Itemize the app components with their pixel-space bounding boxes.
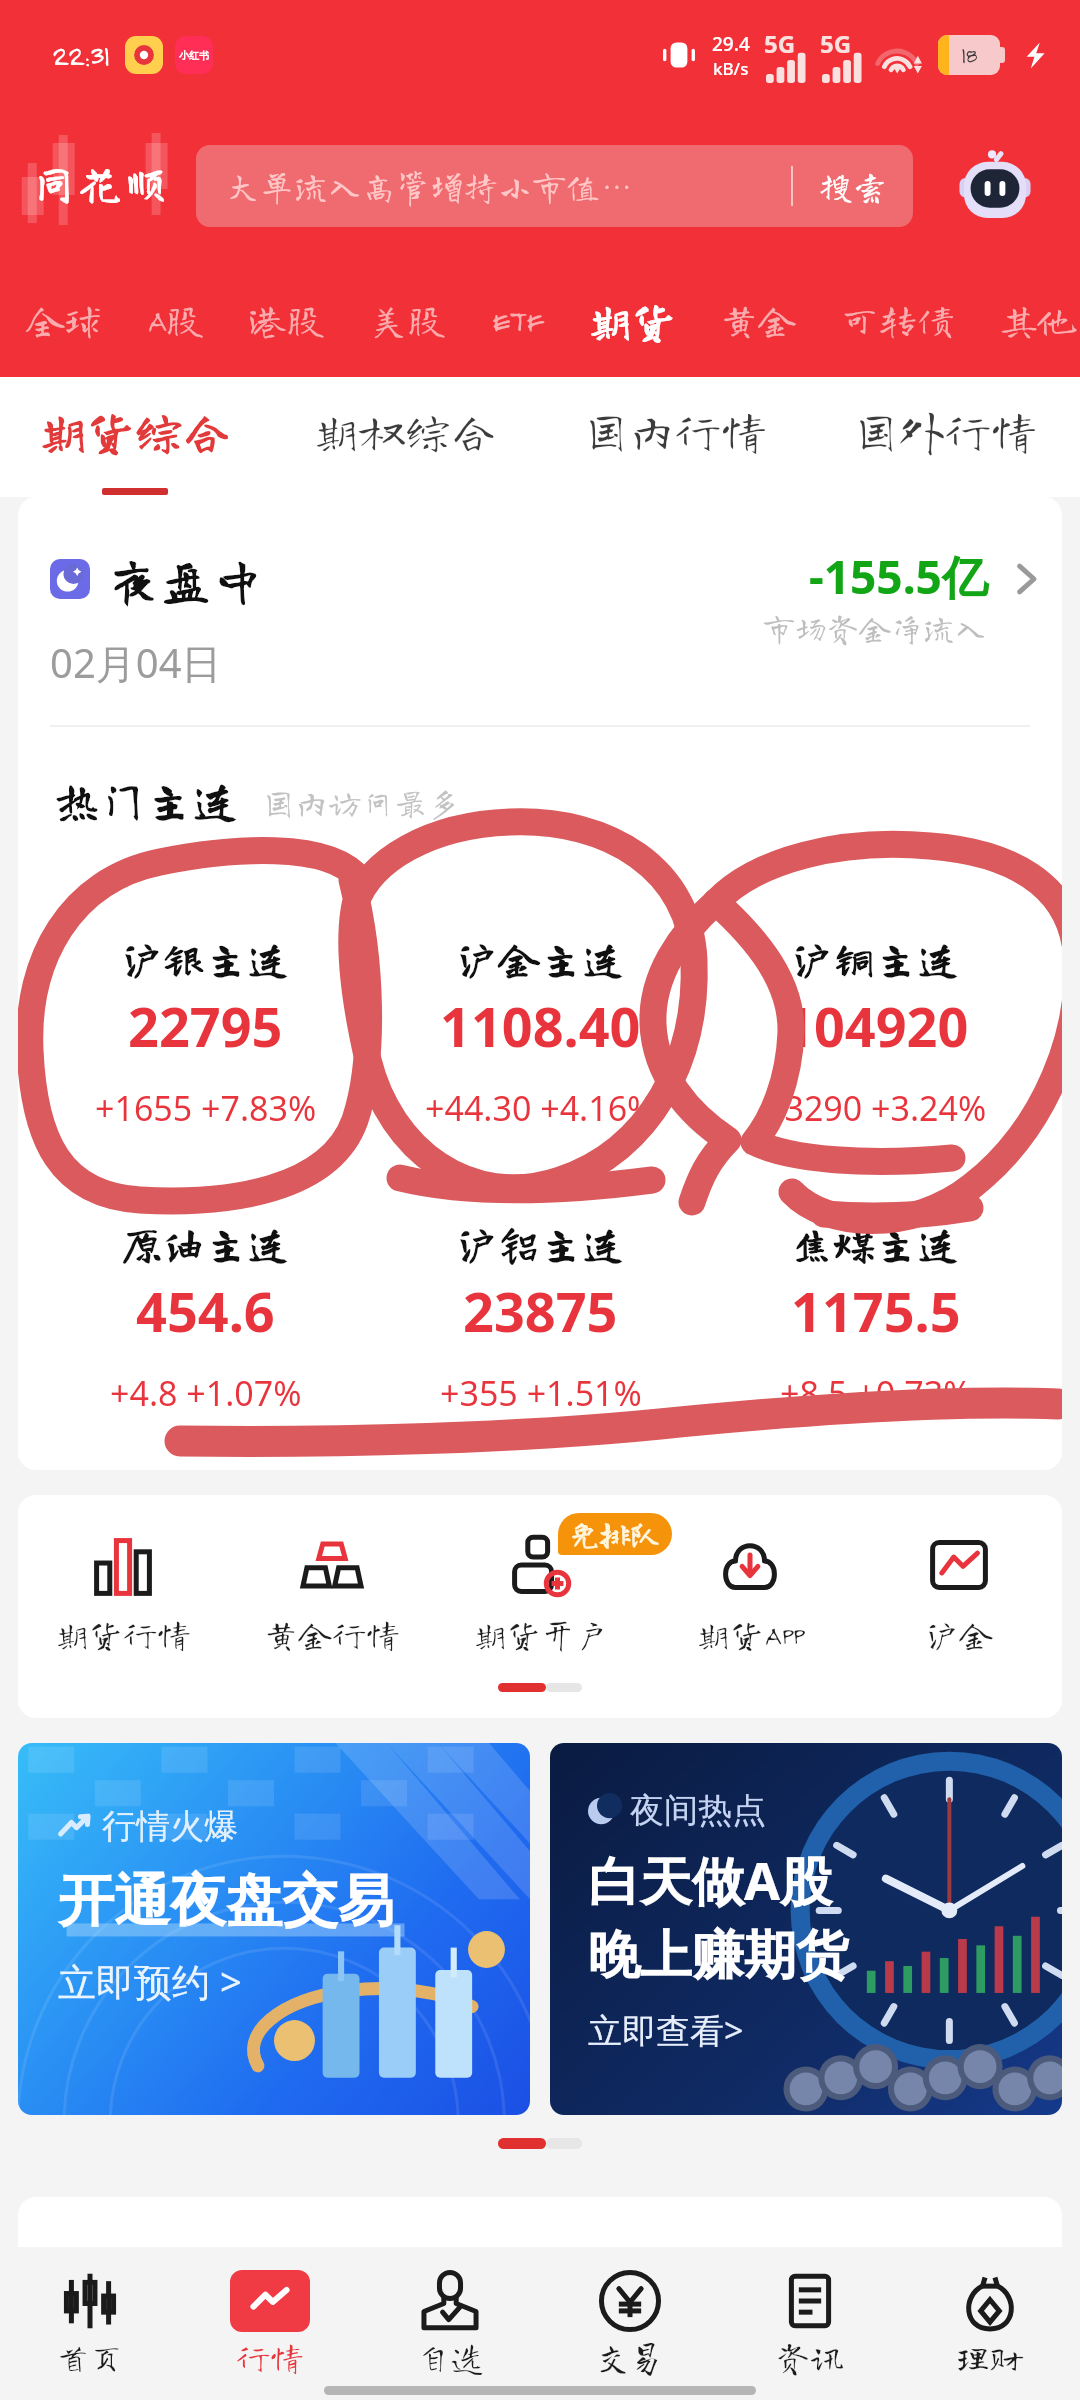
button[interactable]: 首页 <box>0 2268 180 2398</box>
button[interactable]: 期货 <box>566 298 698 342</box>
staticText: 资讯 <box>776 2340 844 2374</box>
button[interactable]: 沪金主连 <box>373 937 708 1131</box>
staticText: 沪银主连 <box>121 937 290 979</box>
staticText: 黄金行情 <box>264 1617 400 1651</box>
staticText: 国外行情 <box>853 408 1037 454</box>
button[interactable]: 期货综合 <box>0 377 270 497</box>
staticText: 夜盘中 <box>108 553 265 605</box>
staticText: 期货行情 <box>55 1617 191 1651</box>
staticText: 1108.40 <box>440 989 641 1063</box>
staticText: 22795 <box>128 989 283 1063</box>
staticText: 国内行情 <box>583 408 767 454</box>
staticText: 22:31 <box>52 38 109 72</box>
staticText: 其他 <box>1000 301 1058 339</box>
staticText: 沪铜主连 <box>791 937 960 979</box>
staticText: 可转债 <box>841 301 956 339</box>
staticText: 期货开户 <box>473 1617 609 1651</box>
staticText: +44.30 +4.16% <box>425 1085 656 1131</box>
button[interactable]: 期货开户 <box>436 1527 645 1651</box>
button[interactable]: 可转债 <box>819 301 978 339</box>
staticText: 1175.5 <box>791 1274 961 1348</box>
staticText: 沪金主连 <box>456 937 625 979</box>
button[interactable]: 夜间热点 <box>550 1743 1062 2115</box>
button[interactable]: 行情 <box>180 2268 360 2398</box>
staticText: 29.4 <box>712 31 750 57</box>
staticText: 同花顺 <box>31 160 169 206</box>
button[interactable]: 港股 <box>227 301 348 339</box>
staticText: 大单流入高管增持小市值… <box>226 169 791 203</box>
button[interactable]: 黄金行情 <box>227 1527 436 1651</box>
button[interactable]: 沪铜主连 <box>708 937 1043 1131</box>
staticText: 沪金 <box>925 1617 993 1651</box>
staticText: 全球 <box>26 301 103 339</box>
button[interactable]: 焦煤主连 <box>708 1222 1043 1416</box>
button[interactable]: 黄金 <box>698 301 819 339</box>
staticText: 原油主连 <box>121 1222 290 1264</box>
staticText: 小红书 <box>179 49 209 62</box>
staticText: 期货综合 <box>39 407 232 455</box>
staticText: 立即预约 > <box>58 1955 242 2007</box>
staticText: +3290 +3.24% <box>765 1085 987 1131</box>
button[interactable]: 原油主连 <box>38 1222 373 1416</box>
staticText: 454.6 <box>136 1274 275 1348</box>
staticText: 美股 <box>370 301 447 339</box>
button[interactable]: 大单流入高管增持小市值… <box>196 145 913 227</box>
button[interactable]: AI 助手 <box>958 150 1032 224</box>
staticText: 搜索 <box>819 169 887 203</box>
staticText: +1655 +7.83% <box>95 1085 317 1131</box>
staticText: 晚上赚期货 <box>588 1923 848 1989</box>
staticText: 行情火爆 <box>102 1805 238 1848</box>
button[interactable]: 交易 <box>540 2268 720 2398</box>
staticText: 交易 <box>596 2340 664 2374</box>
staticText: 首页 <box>56 2340 124 2374</box>
button[interactable]: ETF <box>469 301 566 339</box>
staticText: +4.8 +1.07% <box>110 1370 302 1416</box>
button[interactable]: 其他 <box>978 301 1080 339</box>
button[interactable]: 沪铝主连 <box>373 1222 708 1416</box>
staticText: 热门主连 <box>54 777 238 823</box>
staticText: 夜间热点 <box>630 1789 766 1832</box>
staticText: 期货 <box>588 298 676 342</box>
button[interactable]: 美股 <box>348 301 469 339</box>
staticText: kB/s <box>713 57 749 80</box>
staticText: 开通夜盘交易 <box>58 1866 394 1937</box>
button[interactable]: 期权综合 <box>270 377 540 497</box>
staticText: 期权综合 <box>313 408 497 454</box>
button[interactable]: 国内行情 <box>540 377 810 497</box>
staticText: 104920 <box>783 989 969 1063</box>
staticText: 23875 <box>463 1274 618 1348</box>
button[interactable]: 行情火爆 <box>18 1743 530 2115</box>
staticText: 焦煤主连 <box>791 1222 960 1264</box>
staticText: 市场资金净流入 <box>763 612 988 644</box>
staticText: 理财 <box>956 2340 1024 2374</box>
staticText: 黄金 <box>720 301 797 339</box>
staticText: ETF <box>491 301 544 339</box>
staticText: 国内访问最多 <box>262 786 460 819</box>
staticText: 行情 <box>236 2340 304 2374</box>
staticText: 期货APP <box>696 1617 804 1651</box>
button[interactable]: 全球 <box>4 301 125 339</box>
staticText: +8.5 +0.73% <box>780 1370 972 1416</box>
button[interactable]: 理财 <box>900 2268 1080 2398</box>
staticText: 免排队 <box>570 1519 660 1549</box>
staticText: 18 <box>961 42 977 68</box>
staticText: 沪铝主连 <box>456 1222 625 1264</box>
button[interactable]: A股 <box>125 301 227 339</box>
button[interactable]: 资讯 <box>720 2268 900 2398</box>
staticText: 02月04日 <box>50 635 222 690</box>
staticText: +355 +1.51% <box>440 1370 642 1416</box>
staticText: -155.5亿 <box>809 545 988 608</box>
button[interactable]: 沪银主连 <box>38 937 373 1131</box>
staticText: A股 <box>147 301 205 339</box>
button[interactable]: 期货APP <box>645 1527 854 1651</box>
staticText: 港股 <box>249 301 326 339</box>
staticText: 5G <box>820 27 852 60</box>
button[interactable]: 自选 <box>360 2268 540 2398</box>
button[interactable]: 沪金 <box>854 1527 1062 1651</box>
button[interactable]: 国外行情 <box>810 377 1080 497</box>
staticText: 5G <box>764 27 796 60</box>
staticText: 白天做A股 <box>588 1844 832 1915</box>
button[interactable]: 期货行情 <box>19 1527 227 1651</box>
staticText: 立即查看> <box>588 2007 744 2053</box>
staticText: 自选 <box>416 2340 484 2374</box>
